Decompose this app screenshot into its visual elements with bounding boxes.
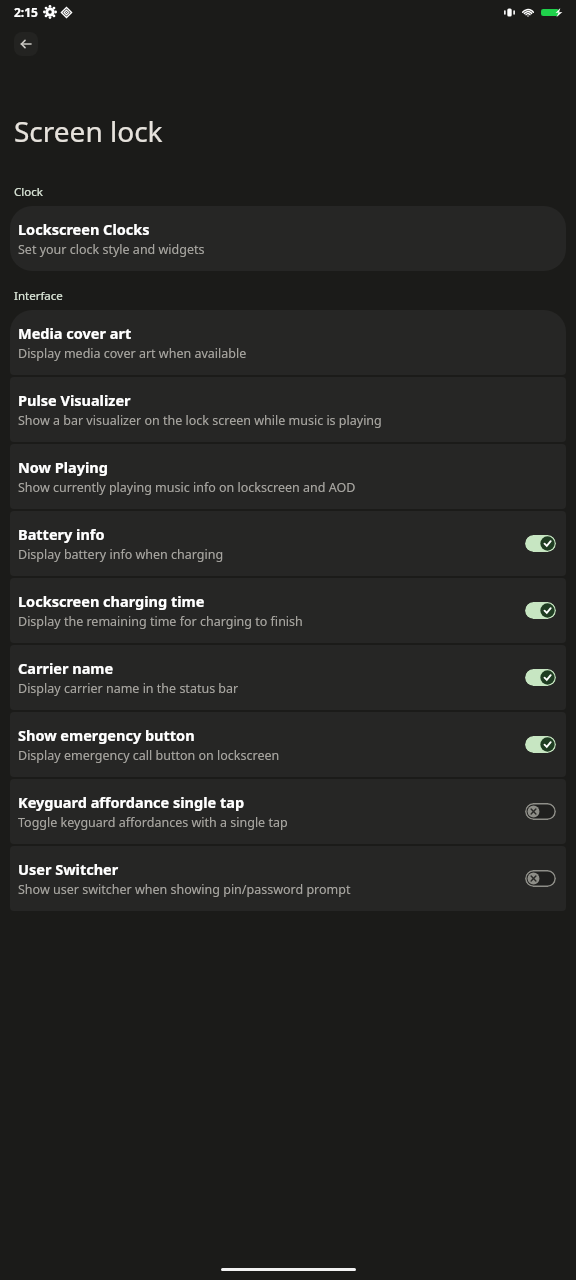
- button[interactable]: Keyguard affordance single tap: [10, 779, 566, 844]
- staticText: Show currently playing music info on loc…: [18, 479, 356, 496]
- button[interactable]: Lockscreen charging time: [10, 578, 566, 643]
- button[interactable]: Toggle on: [525, 736, 556, 753]
- button[interactable]: Pulse Visualizer: [10, 377, 566, 442]
- staticText: Display battery info when charging: [18, 546, 224, 563]
- button[interactable]: Show emergency button: [10, 712, 566, 777]
- staticText: Screen lock: [14, 112, 163, 150]
- staticText: Display the remaining time for charging …: [18, 613, 303, 630]
- staticText: Display emergency call button on lockscr…: [18, 747, 280, 764]
- button[interactable]: Carrier name: [10, 645, 566, 710]
- staticText: Now Playing: [18, 457, 108, 477]
- staticText: Display media cover art when available: [18, 345, 247, 362]
- button[interactable]: Toggle on: [525, 535, 556, 552]
- button[interactable]: Toggle off: [525, 870, 556, 887]
- button[interactable]: Lockscreen Clocks: [10, 206, 566, 271]
- button[interactable]: Now Playing: [10, 444, 566, 509]
- button[interactable]: Toggle off: [525, 803, 556, 820]
- button[interactable]: Toggle on: [525, 669, 556, 686]
- staticText: Show emergency button: [18, 725, 195, 745]
- staticText: Battery info: [18, 524, 105, 544]
- staticText: Show a bar visualizer on the lock screen…: [18, 412, 382, 429]
- staticText: Set your clock style and widgets: [18, 241, 205, 258]
- staticText: Lockscreen charging time: [18, 591, 205, 611]
- button[interactable]: Media cover art: [10, 310, 566, 375]
- staticText: Show user switcher when showing pin/pass…: [18, 881, 351, 898]
- button[interactable]: Battery info: [10, 511, 566, 576]
- button[interactable]: Back: [14, 32, 38, 56]
- staticText: Clock: [14, 184, 43, 200]
- staticText: 2:15: [14, 4, 38, 20]
- staticText: Toggle keyguard affordances with a singl…: [18, 814, 288, 831]
- staticText: Keyguard affordance single tap: [18, 792, 245, 812]
- button[interactable]: Toggle on: [525, 602, 556, 619]
- staticText: Media cover art: [18, 323, 132, 343]
- staticText: User Switcher: [18, 859, 119, 879]
- staticText: Display carrier name in the status bar: [18, 680, 239, 697]
- staticText: Pulse Visualizer: [18, 390, 131, 410]
- staticText: Lockscreen Clocks: [18, 219, 150, 239]
- staticText: Interface: [14, 288, 63, 304]
- button[interactable]: User Switcher: [10, 846, 566, 911]
- staticText: Carrier name: [18, 658, 114, 678]
